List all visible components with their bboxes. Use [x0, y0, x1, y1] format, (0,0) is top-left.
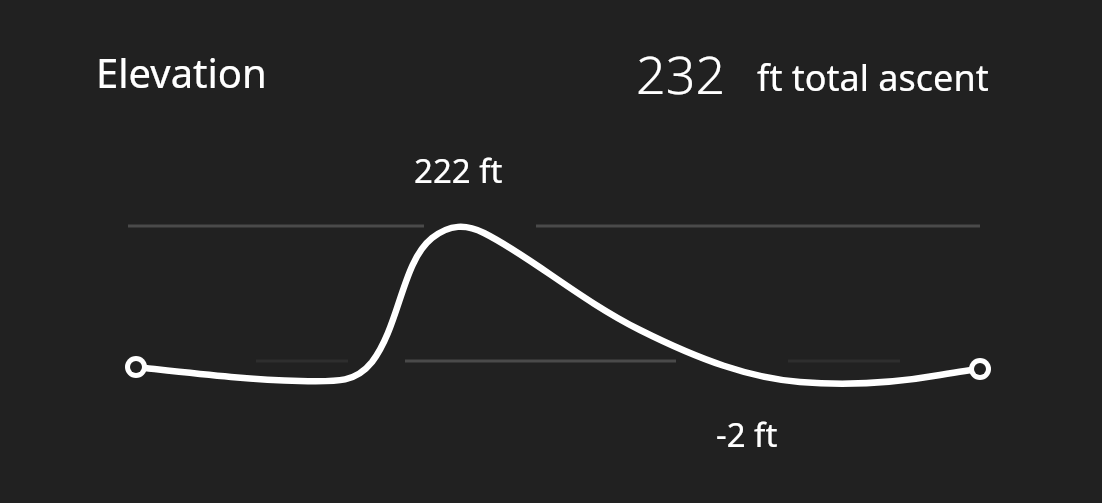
staticText: 222 ft — [414, 148, 503, 193]
button[interactable]: Elevation — [0, 0, 1102, 503]
other: Elevation profile chart — [0, 0, 1102, 503]
staticText: 232 — [636, 38, 726, 109]
staticText: Elevation — [96, 45, 267, 99]
staticText: -2 ft — [716, 412, 778, 457]
staticText: ft total ascent — [757, 53, 989, 102]
